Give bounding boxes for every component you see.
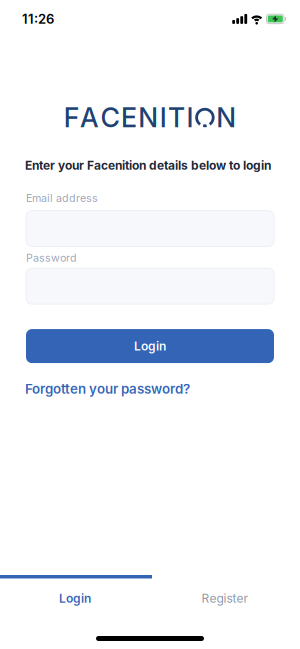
button[interactable]: Login xyxy=(0,585,150,611)
staticText: Register xyxy=(201,591,248,606)
staticText: Enter your Facenition details below to l… xyxy=(25,158,271,172)
staticText: N xyxy=(216,102,236,133)
staticText: Email address xyxy=(26,192,98,204)
staticText: C xyxy=(100,102,119,133)
staticText: E xyxy=(121,102,137,133)
button[interactable]: Forgotten your password? xyxy=(0,381,300,397)
staticText: T xyxy=(168,102,185,133)
staticText: Login xyxy=(59,591,91,606)
button[interactable]: Register xyxy=(150,585,300,611)
staticText: Login xyxy=(134,339,166,353)
button[interactable] xyxy=(0,210,300,246)
button[interactable]: Login xyxy=(0,329,300,363)
button[interactable] xyxy=(0,268,300,304)
staticText: Password xyxy=(26,251,77,264)
staticText: 11:26 xyxy=(22,11,54,27)
staticText: A xyxy=(80,102,99,133)
staticText: N xyxy=(138,102,158,133)
staticText: I xyxy=(160,102,167,133)
staticText: F xyxy=(64,102,79,133)
staticText: I xyxy=(186,102,193,133)
staticText: Forgotten your password? xyxy=(25,381,190,397)
